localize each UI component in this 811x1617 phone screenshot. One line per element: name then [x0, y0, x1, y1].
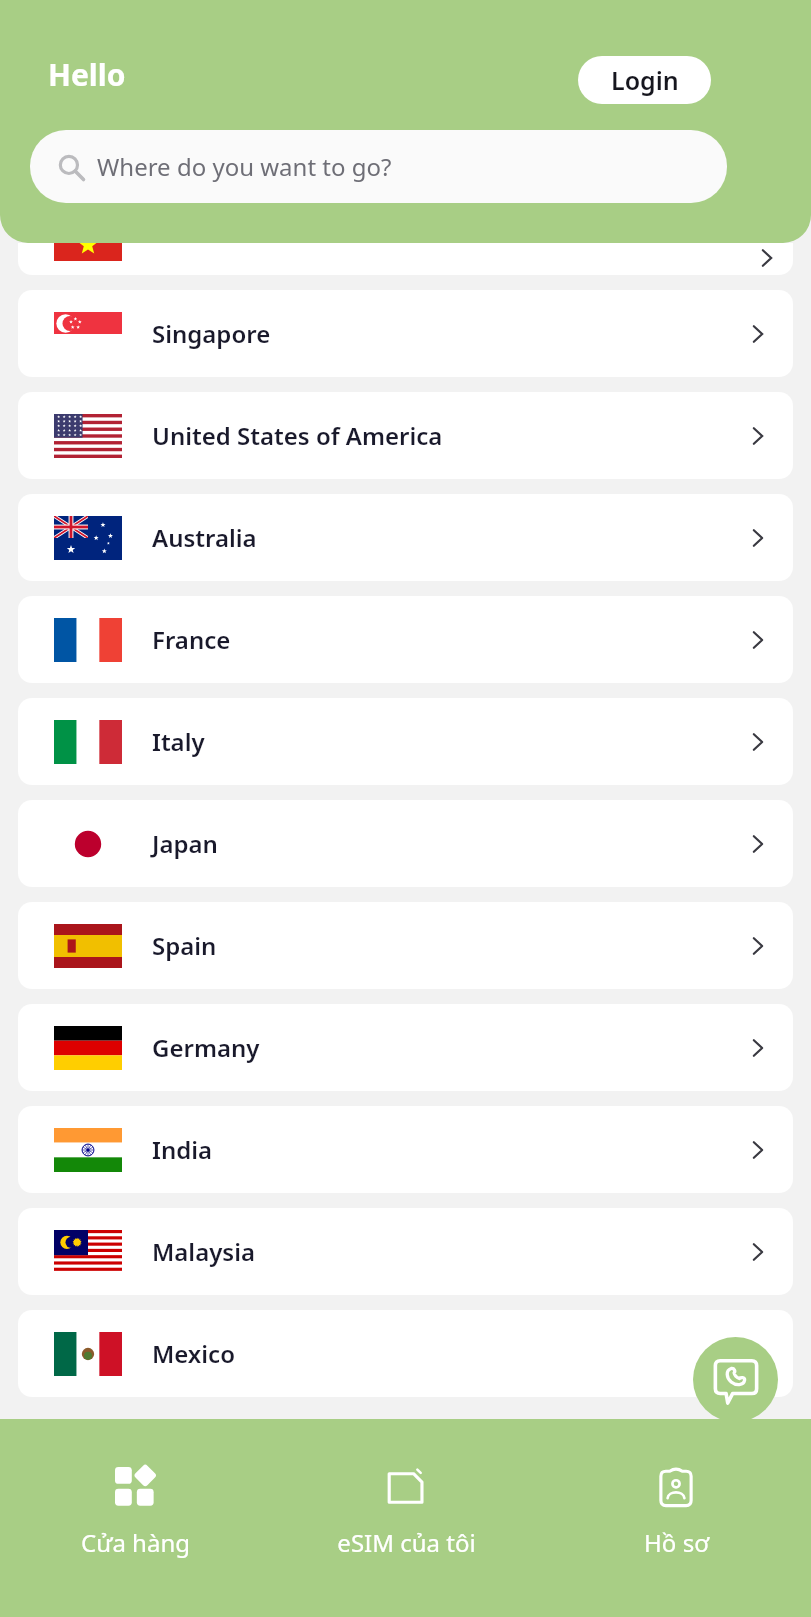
button[interactable]: Spain: [18, 902, 793, 989]
button[interactable]: Cửa hàng: [0, 1419, 271, 1617]
staticText: India: [152, 1133, 213, 1166]
button[interactable]: Hồ sơ: [541, 1419, 811, 1617]
staticText: Hello: [48, 54, 126, 95]
staticText: Login: [611, 63, 679, 97]
button[interactable]: United States of America: [18, 392, 793, 479]
button[interactable]: Contact support on WhatsApp: [693, 1337, 778, 1422]
staticText: Germany: [152, 1031, 260, 1064]
button[interactable]: Italy: [18, 698, 793, 785]
staticText: Japan: [152, 827, 218, 860]
button[interactable]: Login: [578, 56, 711, 104]
button[interactable]: [18, 243, 793, 275]
staticText: Mexico: [152, 1337, 235, 1370]
staticText: Italy: [152, 725, 205, 758]
staticText: Cửa hàng: [81, 1526, 190, 1559]
button[interactable]: Malaysia: [18, 1208, 793, 1295]
button[interactable]: eSIM của tôi: [271, 1419, 541, 1617]
staticText: Malaysia: [152, 1235, 255, 1268]
button[interactable]: India: [18, 1106, 793, 1193]
staticText: eSIM của tôi: [337, 1526, 476, 1559]
staticText: Where do you want to go?: [97, 150, 392, 183]
button[interactable]: Singapore: [18, 290, 793, 377]
staticText: Singapore: [152, 317, 271, 350]
button[interactable]: Germany: [18, 1004, 793, 1091]
staticText: Spain: [152, 929, 217, 962]
button[interactable]: France: [18, 596, 793, 683]
button[interactable]: Japan: [18, 800, 793, 887]
staticText: Australia: [152, 521, 257, 554]
button[interactable]: Mexico: [18, 1310, 793, 1397]
button[interactable]: Where do you want to go?: [30, 130, 727, 203]
staticText: Hồ sơ: [644, 1526, 709, 1559]
button[interactable]: Australia: [18, 494, 793, 581]
staticText: France: [152, 623, 231, 656]
staticText: United States of America: [152, 419, 443, 452]
